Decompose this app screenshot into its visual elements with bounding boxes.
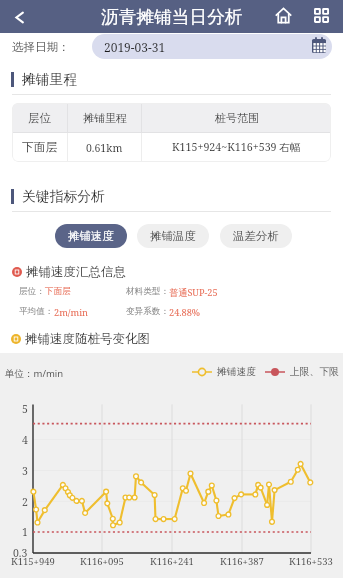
button[interactable]: Apps <box>307 1 335 29</box>
staticText: 下面层 <box>45 286 71 297</box>
staticText: 单位：m/min <box>5 367 64 380</box>
staticText: K116+241 <box>150 555 194 568</box>
staticText: 摊铺速度汇总信息 <box>26 264 126 280</box>
button[interactable]: 摊铺速度 <box>55 224 127 248</box>
staticText: 变异系数： <box>126 306 169 317</box>
staticText: K116+533 <box>289 555 333 568</box>
staticText: 温差分析 <box>233 229 279 243</box>
staticText: 摊铺里程 <box>22 71 78 88</box>
staticText: K116+387 <box>220 555 264 568</box>
staticText: K116+095 <box>80 555 124 568</box>
staticText: 摊铺温度 <box>150 229 196 243</box>
staticText: 普通SUP-25 <box>169 286 218 299</box>
staticText: 摊铺速度 <box>68 229 114 243</box>
staticText: 关键指标分析 <box>22 188 105 205</box>
staticText: 2 <box>22 495 28 509</box>
staticText: 0.3 <box>13 546 28 560</box>
staticText: 材料类型： <box>126 286 169 297</box>
staticText: 24.88% <box>169 306 201 319</box>
button[interactable]: 温差分析 <box>220 224 292 248</box>
staticText: 层位： <box>19 286 45 297</box>
button[interactable]: Home <box>269 1 297 29</box>
staticText: 2m/min <box>54 306 89 319</box>
staticText: 沥青摊铺当日分析 <box>101 6 243 28</box>
staticText: 4 <box>22 433 28 447</box>
button[interactable]: 2019-03-31 <box>92 34 332 59</box>
staticText: 3 <box>22 464 28 478</box>
staticText: 摊铺速度随桩号变化图 <box>25 331 150 347</box>
staticText: 上限、下限 <box>290 366 339 378</box>
button[interactable]: 摊铺温度 <box>137 224 209 248</box>
staticText: 1 <box>22 525 28 539</box>
staticText: 平均值： <box>19 306 54 317</box>
staticText: K115+949 <box>11 555 55 568</box>
staticText: 层位 <box>28 111 51 125</box>
button[interactable]: Back <box>3 1 35 33</box>
staticText: 摊铺里程 <box>83 111 127 125</box>
staticText: 下面层 <box>22 140 58 155</box>
staticText: 0.61km <box>86 141 123 155</box>
staticText: 桩号范围 <box>215 111 259 125</box>
staticText: 2019-03-31 <box>104 39 166 55</box>
staticText: 选择日期： <box>12 40 70 54</box>
staticText: 摊铺速度 <box>217 366 257 378</box>
staticText: K115+924~K116+539 右幅 <box>172 140 301 155</box>
staticText: 5 <box>22 402 28 416</box>
